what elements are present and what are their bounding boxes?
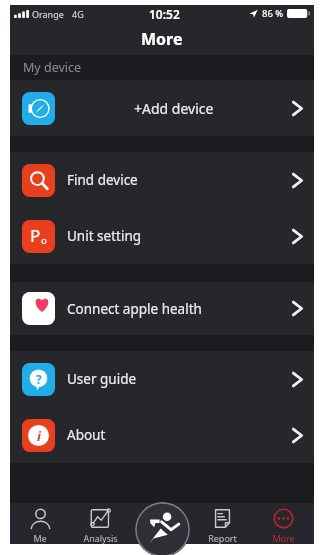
staticText: o [41, 234, 47, 247]
staticText: Connect apple health [67, 300, 292, 318]
staticText: Unit setting [67, 227, 292, 245]
staticText: P [30, 224, 41, 247]
staticText: More [141, 28, 183, 50]
staticText: About [67, 426, 292, 444]
button[interactable]: Analysis [70, 503, 131, 544]
staticText: Me [33, 532, 47, 544]
button[interactable]: Find device [10, 152, 314, 208]
staticText: ? [36, 371, 42, 387]
staticText: Find device [67, 171, 292, 189]
staticText: More [272, 532, 295, 544]
staticText: Analysis [83, 532, 118, 544]
button[interactable]: +Add device [10, 80, 314, 136]
button[interactable]: ? [10, 351, 314, 407]
button[interactable]: Start workout [135, 502, 190, 555]
staticText: i [37, 427, 41, 445]
staticText: User guide [67, 370, 292, 388]
button[interactable]: More [253, 503, 314, 544]
button[interactable]: Me [10, 503, 70, 544]
button[interactable]: Report [192, 503, 253, 544]
staticText: 86 % [262, 7, 284, 20]
button[interactable]: P [10, 208, 314, 264]
staticText: 4G [72, 8, 84, 20]
button[interactable]: Connect apple health [10, 282, 314, 335]
button[interactable]: i [10, 407, 314, 463]
staticText: +Add device [134, 99, 214, 118]
staticText: 10:52 [149, 6, 180, 22]
staticText: My device [23, 59, 82, 76]
staticText: Report [208, 532, 237, 544]
staticText: Orange [32, 8, 64, 20]
